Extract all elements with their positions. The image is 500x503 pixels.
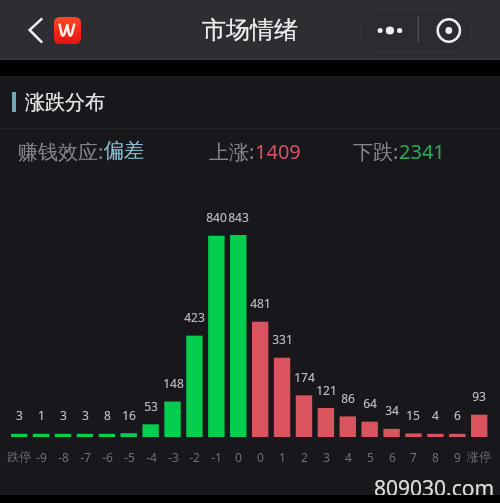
staticText: 0 (257, 449, 264, 465)
staticText: 3 (82, 407, 89, 423)
staticText: 0 (235, 449, 242, 465)
staticText: 2341 (399, 138, 445, 165)
staticText: 1 (38, 407, 45, 423)
button[interactable]: Close (416, 9, 472, 52)
staticText: 7 (410, 449, 417, 465)
staticText: -9 (36, 449, 47, 465)
staticText: 4 (345, 449, 352, 465)
staticText: 1 (279, 449, 286, 465)
staticText: 涨停 (467, 449, 491, 464)
staticText: 上涨: (209, 138, 255, 165)
staticText: 涨跌分布 (25, 90, 105, 115)
staticText: 86 (341, 390, 355, 406)
staticText: 53 (144, 398, 158, 414)
staticText: 5 (367, 449, 374, 465)
staticText: -8 (58, 449, 69, 465)
staticText: -4 (146, 449, 157, 465)
staticText: 跌停 (7, 449, 31, 464)
staticText: -1 (211, 449, 222, 465)
staticText: 174 (294, 369, 315, 385)
staticText: 9 (454, 449, 461, 465)
staticText: 8 (432, 449, 439, 465)
staticText: 15 (406, 407, 420, 423)
staticText: 下跌: (353, 138, 399, 165)
staticText: 2 (301, 449, 308, 465)
staticText: -3 (168, 449, 179, 465)
staticText: 93 (472, 388, 486, 404)
staticText: 市场情绪 (202, 15, 298, 45)
staticText: -5 (124, 449, 135, 465)
staticText: 840 (206, 209, 227, 225)
staticText: 121 (316, 382, 337, 398)
staticText: 偏差 (104, 138, 144, 163)
staticText: 3 (60, 407, 67, 423)
staticText: 16 (122, 407, 136, 423)
staticText: 809030.com (374, 474, 495, 503)
staticText: -6 (102, 449, 113, 465)
staticText: 148 (163, 375, 184, 391)
staticText: 423 (184, 309, 205, 325)
staticText: 64 (363, 395, 377, 411)
staticText: 4 (432, 407, 439, 423)
staticText: 34 (385, 402, 399, 418)
staticText: 赚钱效应: (18, 138, 104, 165)
button[interactable]: More (360, 9, 472, 52)
staticText: 1409 (255, 138, 301, 165)
button[interactable]: Weibo (54, 17, 81, 44)
staticText: -7 (80, 449, 91, 465)
button[interactable]: 赚钱效应: (18, 138, 144, 165)
staticText: 3 (16, 407, 23, 423)
staticText: 6 (454, 407, 461, 423)
staticText: 331 (272, 331, 293, 347)
staticText: 3 (323, 449, 330, 465)
staticText: 481 (250, 295, 271, 311)
staticText: 843 (228, 209, 249, 225)
staticText: 6 (389, 449, 396, 465)
button[interactable]: Back (22, 10, 50, 50)
staticText: 8 (104, 407, 111, 423)
staticText: -2 (189, 449, 200, 465)
